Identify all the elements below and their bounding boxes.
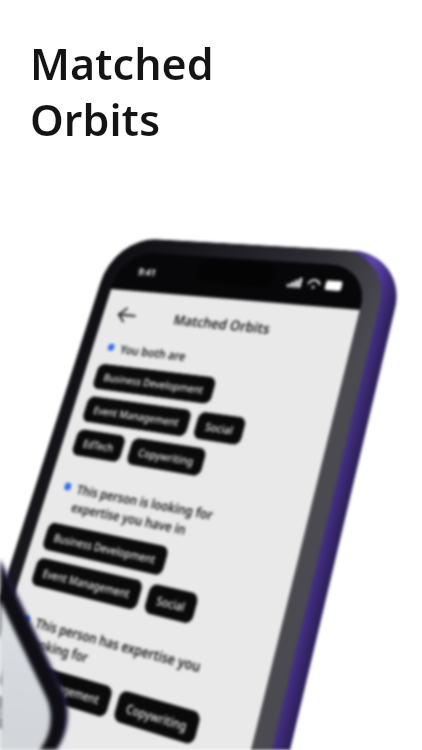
button[interactable]: Event Management xyxy=(30,557,144,611)
staticText: Event Management xyxy=(41,565,132,601)
button[interactable]: Copywriting xyxy=(125,437,207,477)
staticText: EdTech xyxy=(81,436,116,455)
staticText: This person has expertise you looking fo… xyxy=(27,613,204,698)
staticText: Business Development xyxy=(102,370,206,397)
staticText: Copywriting xyxy=(124,700,189,734)
staticText: Social xyxy=(0,704,28,728)
button[interactable]: Back xyxy=(114,302,145,330)
staticText: Social xyxy=(155,592,187,615)
button[interactable]: Social xyxy=(0,694,39,738)
staticText: Event Management xyxy=(92,403,181,429)
staticText: Copywriting xyxy=(136,445,196,469)
staticText: Event Management xyxy=(9,666,102,708)
button[interactable]: Copywriting xyxy=(112,689,202,745)
button[interactable]: Business Development xyxy=(91,363,217,404)
button[interactable]: Social xyxy=(192,411,247,446)
staticText: Matched Orbits xyxy=(139,307,309,342)
staticText: Matched Orbits xyxy=(30,34,214,149)
staticText: Business Development xyxy=(52,530,158,567)
staticText: This person is looking for expertise you… xyxy=(69,480,215,544)
button[interactable]: Event Management xyxy=(0,656,114,718)
staticText: 9:41 xyxy=(137,265,158,279)
button[interactable]: EdTech xyxy=(71,428,127,463)
staticText: Social xyxy=(204,419,235,437)
button[interactable]: Event Management xyxy=(81,395,193,437)
button[interactable]: Social xyxy=(143,583,199,625)
staticText: You both are xyxy=(118,341,188,364)
button[interactable]: Business Development xyxy=(41,522,170,576)
